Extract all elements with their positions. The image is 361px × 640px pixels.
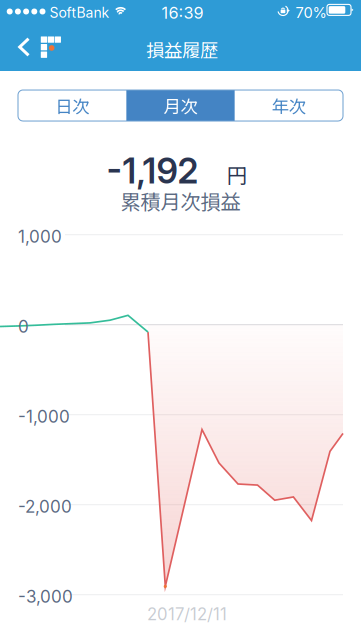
staticText: 累積月次損益 [120,186,240,215]
button[interactable]: Back [18,27,64,67]
staticText: 16:39 [161,3,203,23]
staticText: 2017/12/11 [147,604,227,624]
staticText: 月次 [163,93,197,118]
button[interactable]: 年次 [235,90,343,121]
staticText: 1,000 [18,226,62,247]
staticText: SoftBank [49,4,109,21]
staticText: -1,192 [106,150,198,192]
button[interactable]: 日次 [18,90,126,121]
staticText: 損益履歴 [146,36,218,63]
button[interactable]: 月次 [126,90,235,121]
staticText: 年次 [272,93,306,118]
staticText: -3,000 [18,586,73,607]
staticText: 日次 [55,93,89,118]
staticText: 0 [18,316,29,337]
staticText: 70% [295,4,326,22]
staticText: 円 [226,159,247,189]
staticText: -2,000 [18,496,72,517]
staticText: -1,000 [18,406,70,427]
